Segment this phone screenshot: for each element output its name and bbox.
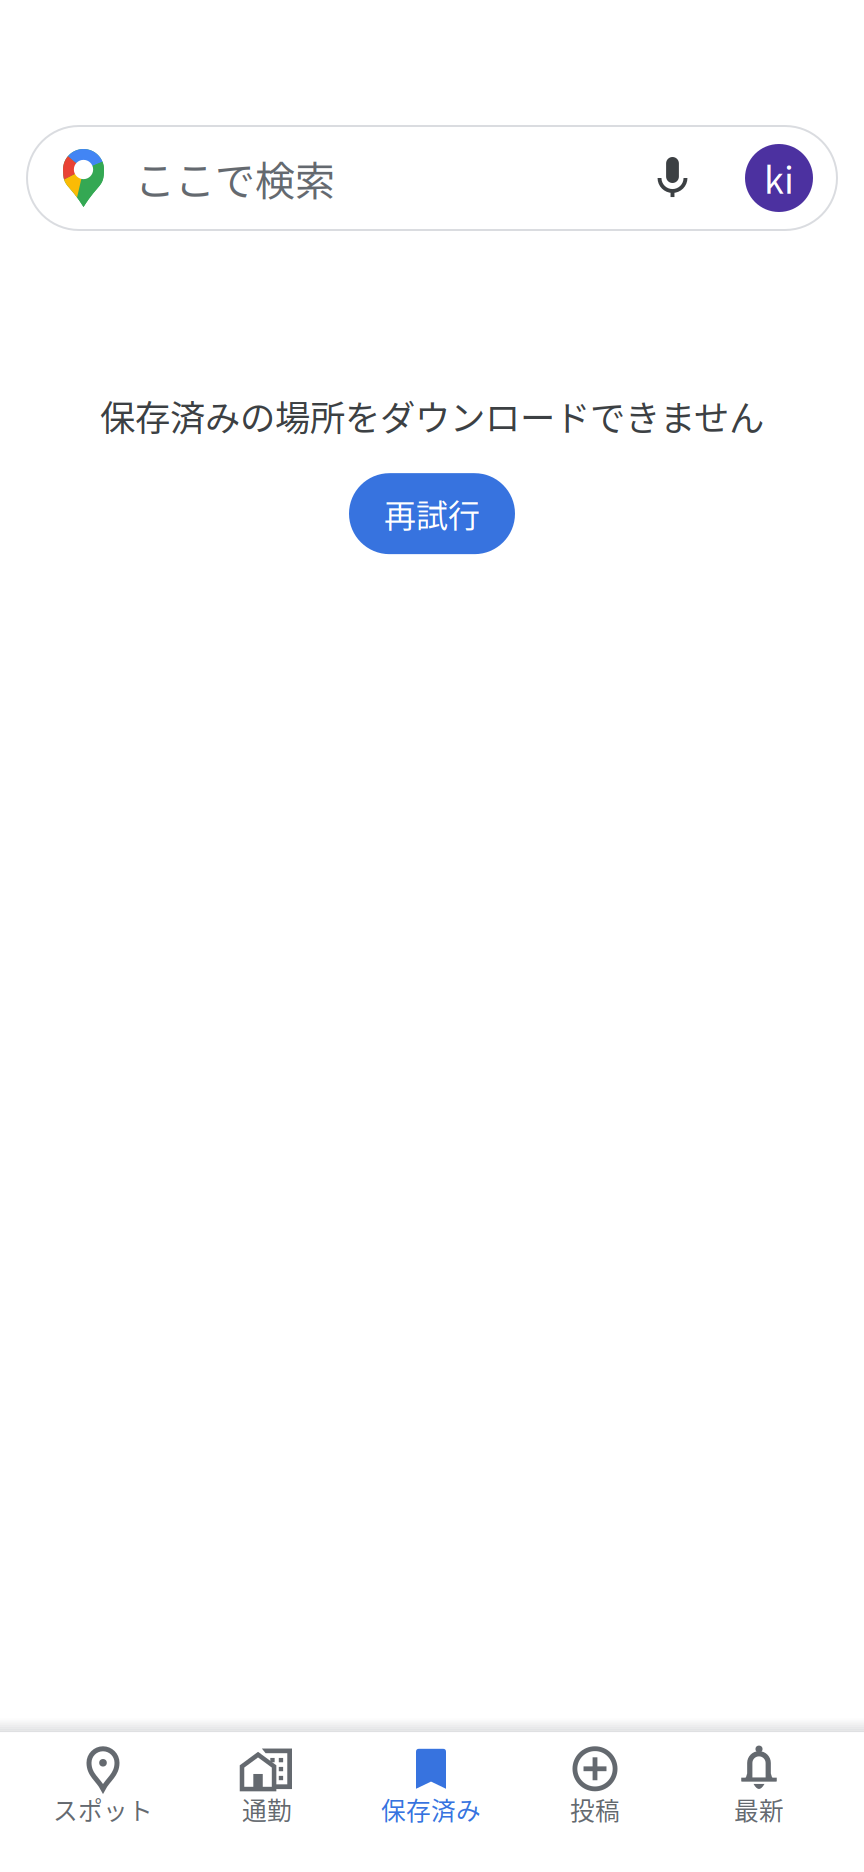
button[interactable]: 通勤: [185, 1732, 349, 1872]
staticText: 通勤: [242, 1791, 292, 1827]
button[interactable]: 保存済み: [349, 1732, 513, 1872]
staticText: 保存済み: [381, 1791, 481, 1827]
staticText: 最新: [734, 1791, 784, 1827]
staticText: ki: [764, 152, 794, 204]
staticText: 保存済みの場所をダウンロードできません: [100, 390, 764, 441]
button[interactable]: ここで検索: [27, 126, 837, 230]
button[interactable]: 再試行: [349, 473, 515, 554]
staticText: スポット: [53, 1791, 153, 1827]
button[interactable]: 最新: [677, 1732, 841, 1872]
staticText: ここで検索: [135, 149, 335, 207]
button[interactable]: 投稿: [513, 1732, 677, 1872]
button[interactable]: スポット: [21, 1732, 185, 1872]
staticText: 投稿: [570, 1791, 620, 1827]
staticText: 再試行: [384, 490, 480, 537]
